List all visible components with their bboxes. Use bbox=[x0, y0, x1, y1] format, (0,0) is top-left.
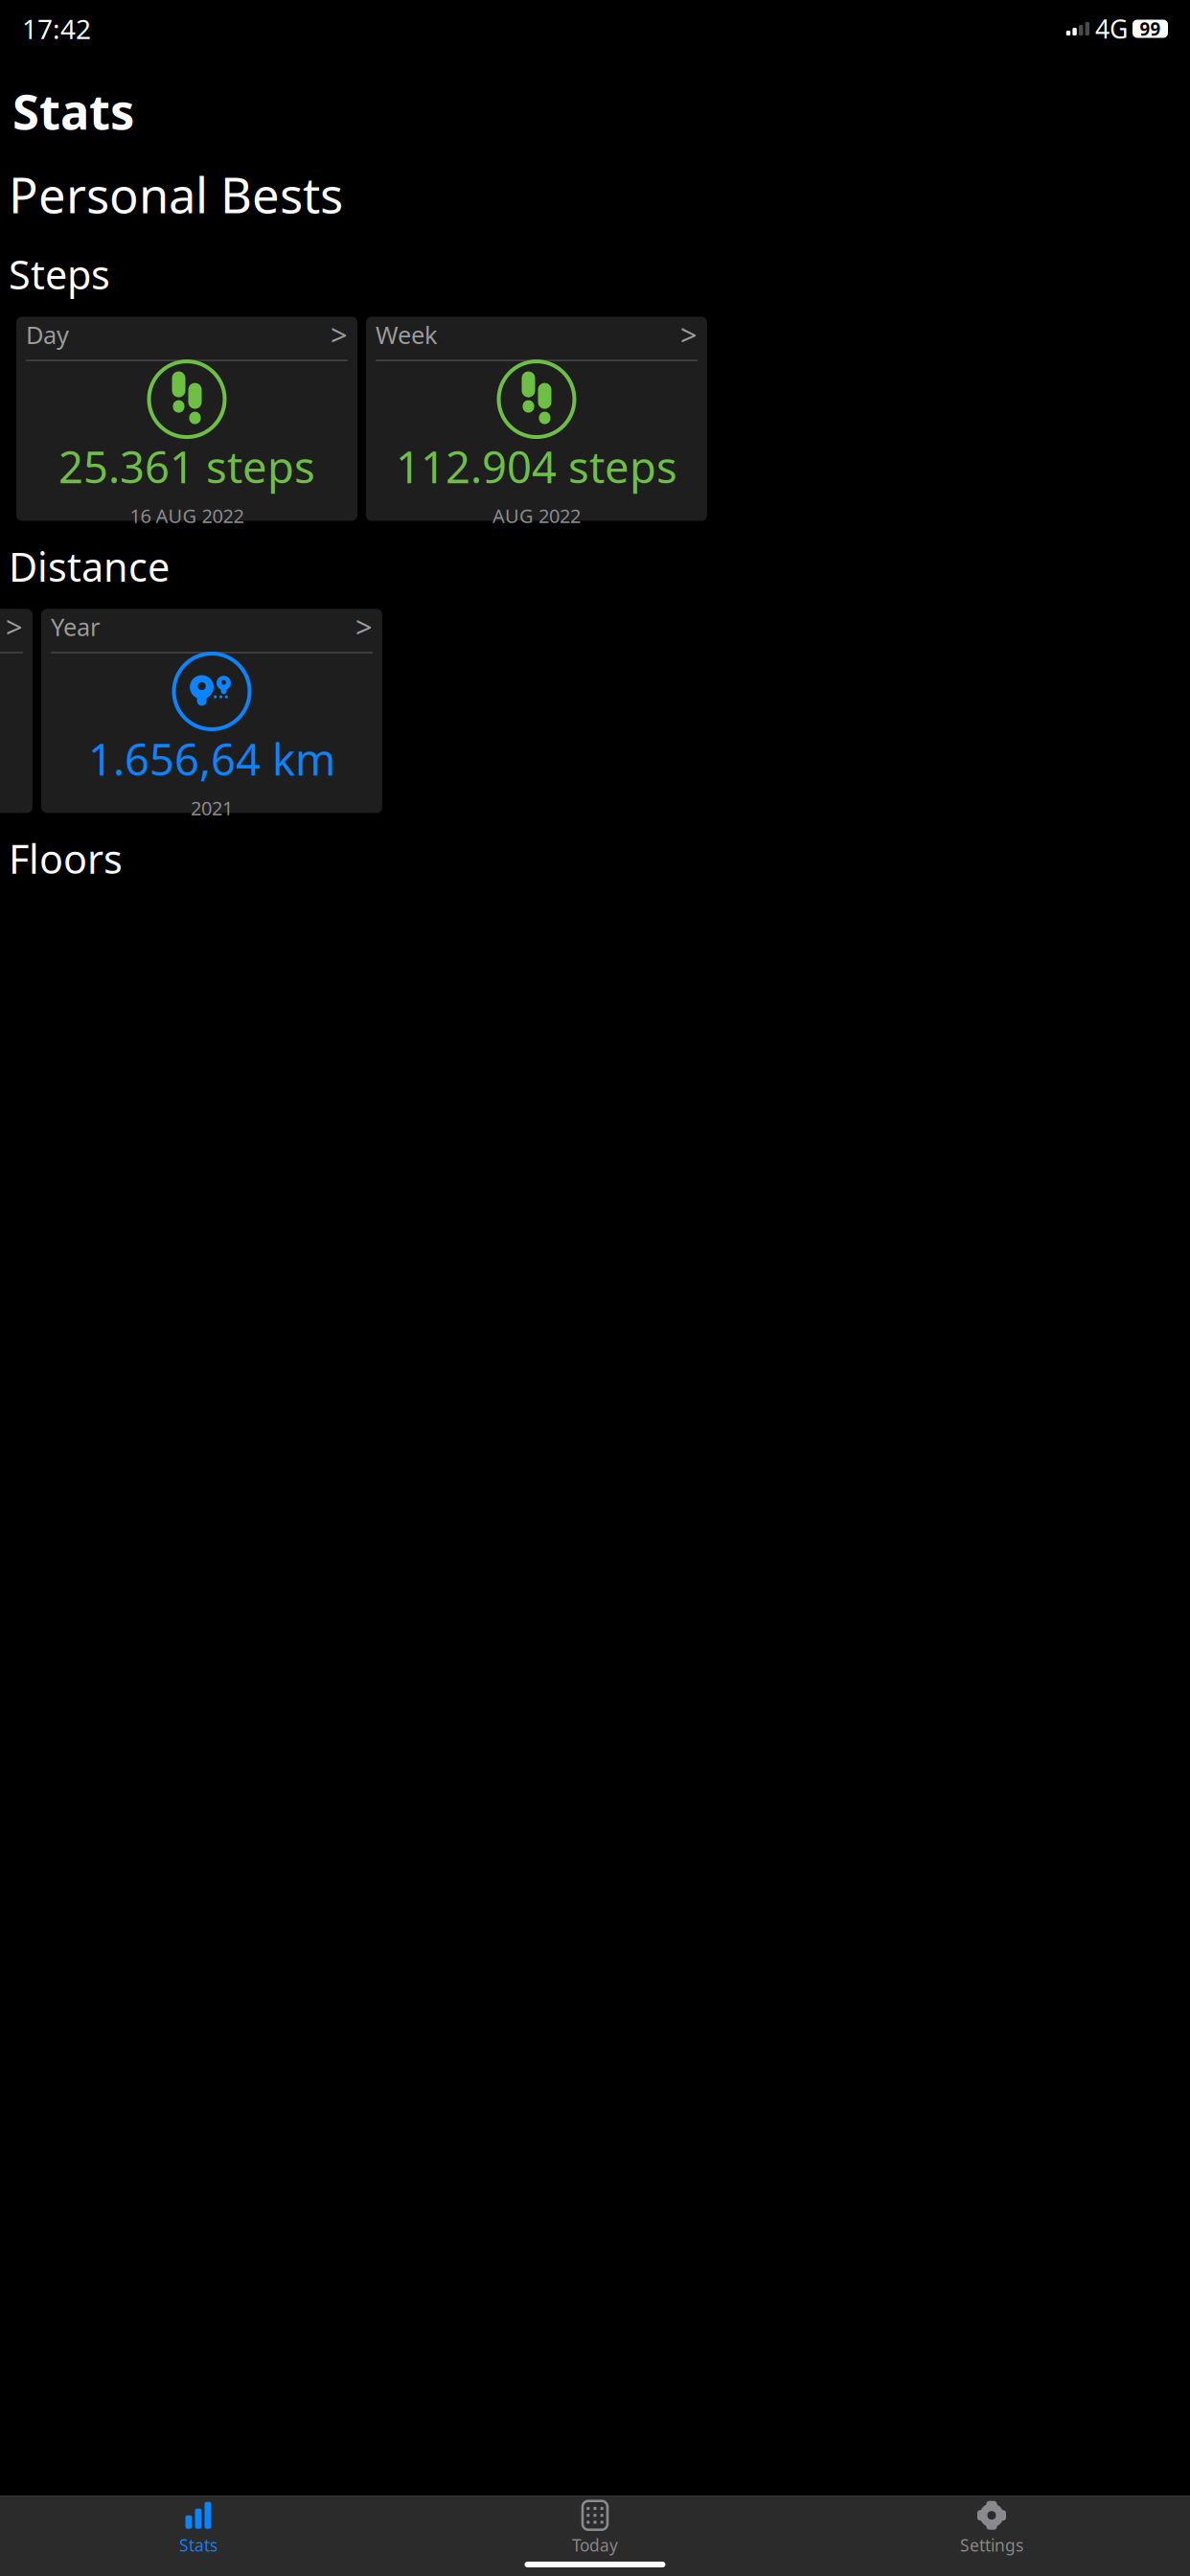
staticText: Floors bbox=[9, 832, 123, 885]
staticText: Day bbox=[26, 318, 69, 351]
staticText: 16 AUG 2022 bbox=[130, 503, 244, 528]
staticText: 2021 bbox=[191, 795, 233, 821]
button[interactable]: Month bbox=[0, 609, 33, 813]
staticText: > bbox=[331, 315, 348, 354]
staticText: 4G bbox=[1095, 12, 1128, 46]
button[interactable]: Today bbox=[397, 2494, 793, 2556]
staticText: 25.361 steps bbox=[58, 438, 315, 495]
button[interactable]: Week bbox=[366, 317, 707, 521]
staticText: > bbox=[680, 315, 698, 354]
staticText: Week bbox=[376, 318, 438, 351]
staticText: Settings bbox=[960, 2534, 1023, 2556]
staticText: 112.904 steps bbox=[396, 438, 677, 495]
staticText: Stats bbox=[12, 79, 134, 143]
staticText: Distance bbox=[9, 540, 170, 593]
button[interactable]: Year bbox=[41, 609, 382, 813]
staticText: Stats bbox=[179, 2534, 217, 2556]
staticText: 1.656,64 km bbox=[88, 730, 335, 787]
staticText: 99 bbox=[1140, 17, 1161, 41]
staticText: Today bbox=[572, 2534, 618, 2556]
button[interactable]: Stats bbox=[0, 2494, 397, 2556]
staticText: Steps bbox=[9, 248, 110, 300]
staticText: Year bbox=[51, 611, 100, 643]
button[interactable]: Day bbox=[16, 317, 357, 521]
staticText: 17:42 bbox=[22, 11, 91, 47]
staticText: AUG 2022 bbox=[492, 503, 581, 528]
staticText: Personal Bests bbox=[9, 162, 343, 227]
staticText: > bbox=[6, 607, 23, 646]
button[interactable]: Settings bbox=[793, 2494, 1190, 2556]
staticText: > bbox=[355, 607, 373, 646]
